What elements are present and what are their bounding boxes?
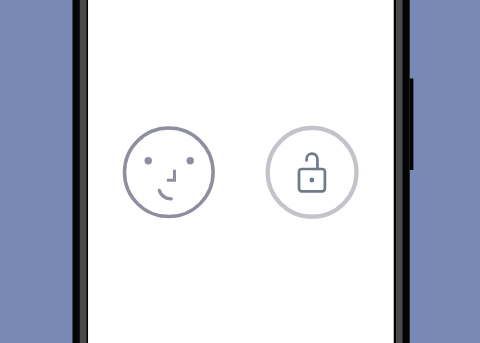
button[interactable]: Unlock <box>267 127 359 219</box>
button[interactable]: Face, open profile <box>123 127 215 219</box>
